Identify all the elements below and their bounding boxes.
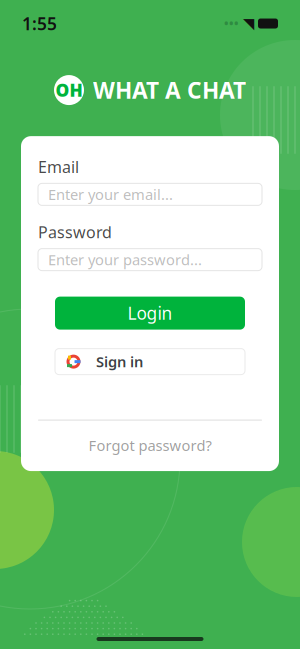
button[interactable]: Enter your email... [38,183,262,205]
staticText: ◥ [243,15,254,32]
button[interactable]: Enter your password... [38,249,262,271]
staticText: Forgot password? [88,436,211,455]
staticText: Login [127,302,172,325]
staticText: WHAT A CHAT [93,75,246,105]
staticText: ••• [224,15,239,31]
staticText: Enter your password... [48,250,202,269]
staticText: Sign in [96,352,143,371]
button[interactable]: Forgot password? [38,434,262,457]
button[interactable]: Sign in [55,349,245,375]
staticText: Enter your email... [48,185,173,204]
staticText: Email [38,156,79,177]
staticText: OH [55,79,82,102]
button[interactable]: Login [55,297,245,330]
staticText: 1:55 [22,12,57,35]
staticText: Password [38,221,112,243]
